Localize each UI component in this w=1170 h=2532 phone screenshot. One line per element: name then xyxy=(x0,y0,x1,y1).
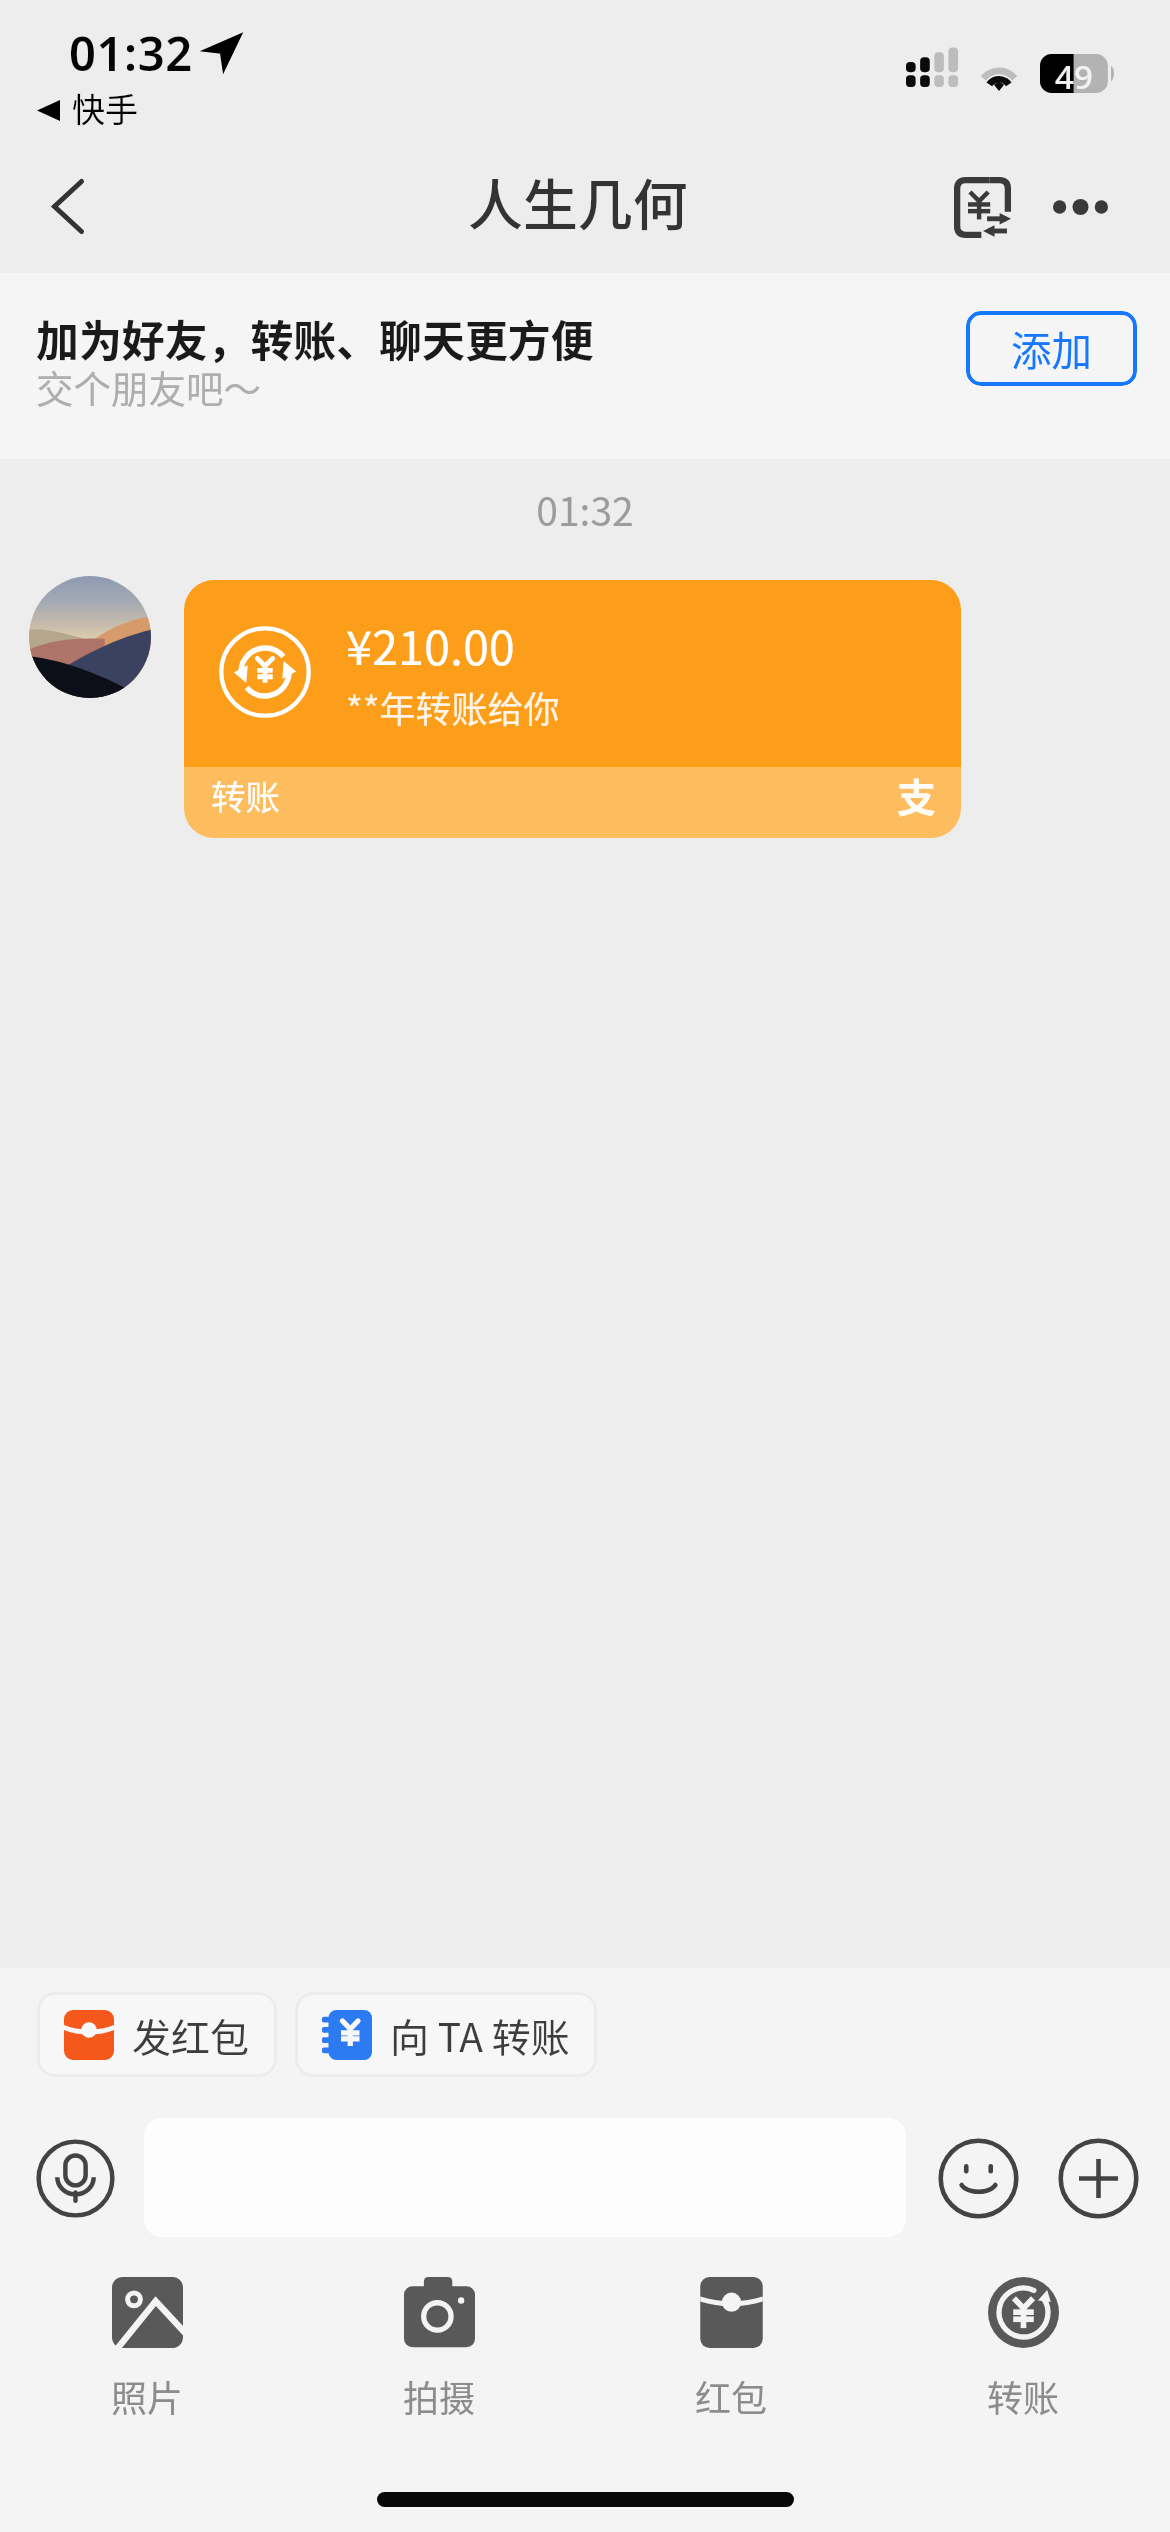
button[interactable]: 添加 xyxy=(966,311,1137,386)
staticText: 加为好友，转账、聊天更方便 xyxy=(36,307,594,369)
button[interactable]: 拍摄 xyxy=(294,2277,584,2422)
staticText: 支 xyxy=(897,767,937,823)
staticText: 49 xyxy=(1055,54,1093,93)
staticText: 01:32 xyxy=(69,21,193,85)
staticText: 添加 xyxy=(1011,319,1092,378)
staticText: 发红包 xyxy=(132,2007,250,2063)
button[interactable]: More xyxy=(1023,145,1137,268)
button[interactable]: More actions xyxy=(1056,2136,1140,2220)
button[interactable]: 向 TA 转账 xyxy=(295,1992,597,2077)
button[interactable]: Back xyxy=(11,145,125,268)
button[interactable]: Emoji xyxy=(936,2136,1020,2220)
button[interactable]: ¥210.00 xyxy=(184,580,961,838)
button[interactable]: Transfer xyxy=(925,146,1039,269)
staticText: 快手 xyxy=(72,84,138,132)
staticText: 交个朋友吧～ xyxy=(36,359,261,413)
staticText: 照片 xyxy=(111,2370,184,2422)
button[interactable]: 发红包 xyxy=(37,1992,277,2077)
staticText: 转账 xyxy=(987,2370,1060,2422)
staticText: 红包 xyxy=(695,2370,768,2422)
staticText: 向 TA 转账 xyxy=(390,2007,570,2063)
button[interactable]: Voice input xyxy=(33,2136,117,2220)
staticText: 转账 xyxy=(211,770,280,820)
staticText: 01:32 xyxy=(0,481,1170,537)
staticText: **年转账给你 xyxy=(346,681,560,733)
staticText: 拍摄 xyxy=(403,2370,476,2422)
staticText: 人生几何 xyxy=(468,161,688,240)
staticText: ¥210.00 xyxy=(346,611,515,679)
button[interactable]: 转账 xyxy=(878,2277,1168,2422)
button[interactable]: 照片 xyxy=(2,2277,292,2422)
button[interactable]: 红包 xyxy=(586,2277,876,2422)
